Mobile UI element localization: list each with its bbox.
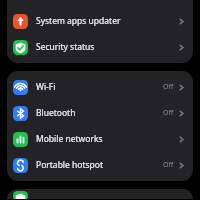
- staticText: Wi-Fi: [36, 81, 163, 93]
- button[interactable]: Bluetooth: [7, 100, 193, 126]
- staticText: Portable hotspot: [36, 159, 163, 171]
- button[interactable]: System apps updater: [7, 8, 193, 34]
- staticText: Security status: [36, 41, 177, 53]
- staticText: Mobile networks: [36, 133, 177, 145]
- staticText: System apps updater: [36, 15, 177, 27]
- staticText: Off: [163, 160, 174, 170]
- staticText: Bluetooth: [36, 107, 163, 119]
- staticText: Off: [163, 82, 174, 92]
- button[interactable]: Wi-Fi: [7, 74, 193, 100]
- button[interactable]: Mobile networks: [7, 126, 193, 152]
- button[interactable]: Portable hotspot: [7, 152, 193, 178]
- button[interactable]: Security status: [7, 34, 193, 60]
- button[interactable]: [7, 191, 193, 199]
- staticText: Off: [163, 108, 174, 118]
